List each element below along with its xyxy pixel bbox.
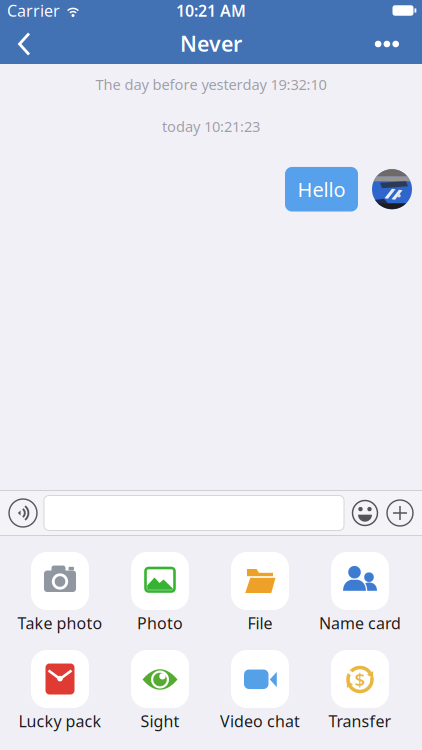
button[interactable]: Back <box>0 21 44 64</box>
staticText: today 10:21:23 <box>162 116 260 136</box>
button[interactable]: File <box>210 552 310 632</box>
staticText: Take photo <box>17 612 102 634</box>
button[interactable]: Lucky pack <box>10 650 110 730</box>
button[interactable]: More options <box>387 500 413 526</box>
staticText: The day before yesterday 19:32:10 <box>95 74 326 94</box>
button[interactable]: $ <box>310 650 410 730</box>
staticText: 10:21 AM <box>176 0 246 21</box>
button[interactable]: Sight <box>110 650 210 730</box>
staticText: Hello <box>297 176 345 203</box>
staticText: Lucky pack <box>18 710 101 732</box>
staticText: Carrier <box>7 0 60 21</box>
button[interactable]: More <box>363 21 422 64</box>
button[interactable]: Video chat <box>210 650 310 730</box>
staticText: File <box>247 612 272 634</box>
staticText: $ <box>354 667 365 692</box>
button[interactable]: Name card <box>310 552 410 632</box>
staticText: Sight <box>140 710 179 732</box>
staticText: Photo <box>137 612 183 634</box>
staticText: Name card <box>319 612 401 634</box>
button[interactable]: Voice input <box>9 499 37 527</box>
button[interactable]: Photo <box>110 552 210 632</box>
staticText: Never <box>180 29 242 58</box>
staticText: Transfer <box>328 710 391 732</box>
button[interactable]: Take photo <box>10 552 110 632</box>
staticText: Video chat <box>220 710 300 732</box>
button[interactable]: Emoji <box>352 500 377 525</box>
